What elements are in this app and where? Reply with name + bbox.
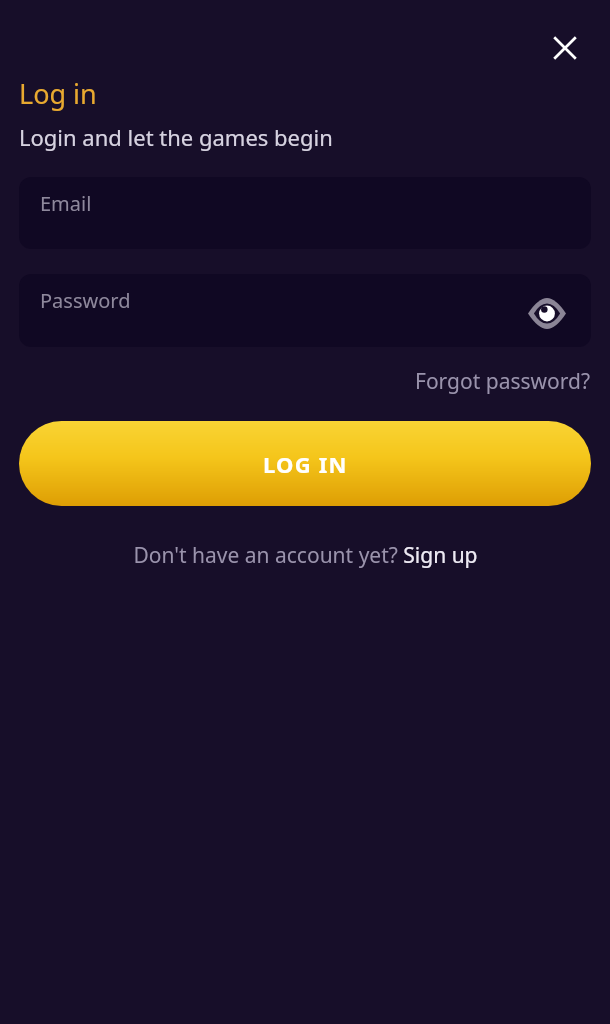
staticText: Email [40,190,92,217]
button[interactable]: Don't have an account yet? Sign up [133,541,478,570]
staticText: Password [40,287,131,314]
staticText: Log in [19,75,97,112]
button[interactable]: Password [19,274,591,347]
button[interactable]: Forgot password? [415,367,591,396]
staticText: LOG IN [263,449,348,479]
button[interactable]: Email [19,177,591,249]
button[interactable]: Close [541,24,589,72]
button[interactable]: Show password [525,291,569,335]
button[interactable]: LOG IN [19,421,591,506]
staticText: Don't have an account yet? Sign up [133,541,478,570]
staticText: Login and let the games begin [19,122,333,152]
staticText: Forgot password? [415,367,591,396]
